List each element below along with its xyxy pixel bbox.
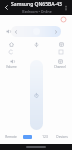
staticText: Samsung QN65BA-43 (11, 1, 62, 8)
staticText: Remote (5, 135, 17, 139)
button[interactable]: Keypad (20, 130, 35, 144)
button[interactable]: 123 (37, 130, 52, 144)
staticText: Volume (6, 65, 17, 69)
button[interactable]: Mute (5, 28, 12, 35)
button[interactable]: Volume (6, 57, 17, 69)
staticText: 123 (42, 135, 48, 139)
staticText: Bedroom • Online (22, 9, 52, 14)
button[interactable]: Channel (54, 57, 66, 69)
button[interactable]: Devices (54, 130, 69, 144)
staticText: Channel (54, 65, 66, 69)
button[interactable]: Power off (61, 17, 66, 22)
button[interactable]: Home (7, 40, 16, 49)
staticText: Devices (56, 135, 68, 139)
button[interactable]: More options (61, 3, 70, 12)
button[interactable]: Remote (3, 130, 18, 144)
button[interactable]: Guide (57, 40, 66, 49)
button[interactable]: Back (2, 3, 11, 12)
button[interactable]: Navigation pad (11, 26, 61, 37)
button[interactable]: Voice (32, 40, 41, 49)
button[interactable]: Settings (57, 48, 65, 56)
button[interactable]: Back (7, 48, 15, 56)
button[interactable]: Power and volume slider (30, 60, 43, 130)
